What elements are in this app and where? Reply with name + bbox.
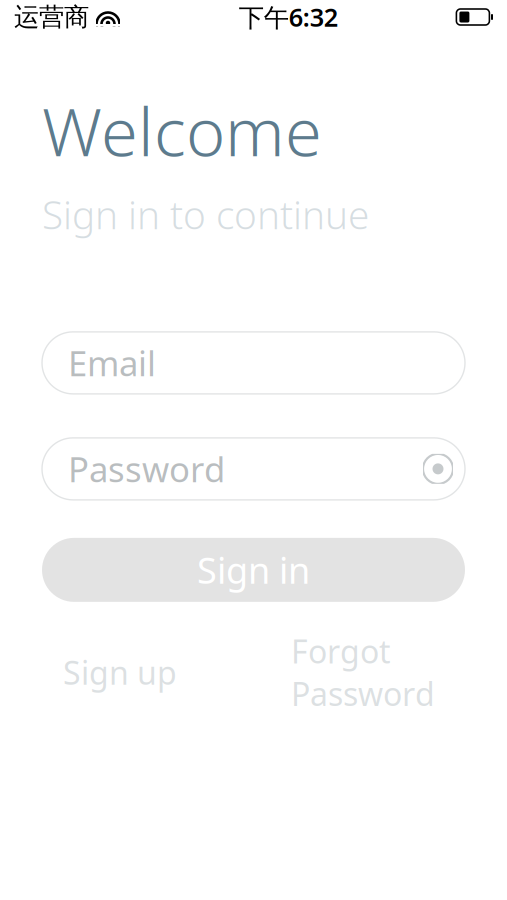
staticText: Sign in bbox=[197, 546, 310, 594]
button[interactable]: Email bbox=[42, 332, 465, 394]
staticText: Sign in to continue bbox=[42, 188, 369, 240]
button[interactable]: Sign in bbox=[42, 538, 465, 602]
staticText: 运营商 bbox=[14, 1, 89, 32]
staticText: Email bbox=[68, 340, 156, 386]
staticText: Password bbox=[68, 446, 225, 492]
staticText: Forgot Password bbox=[291, 630, 435, 715]
staticText: Sign up bbox=[63, 651, 177, 694]
staticText: Welcome bbox=[42, 86, 322, 174]
button[interactable]: Password bbox=[42, 438, 411, 500]
button[interactable]: Sign up bbox=[63, 643, 177, 702]
staticText: 下午6:32 bbox=[239, 0, 338, 34]
button[interactable]: Forgot Password bbox=[291, 622, 435, 723]
button[interactable]: Show password bbox=[411, 438, 465, 500]
